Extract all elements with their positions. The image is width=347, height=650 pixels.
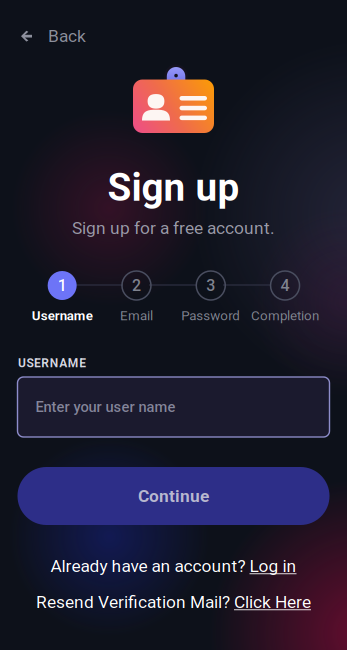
staticText: Resend Verification Mail? Click Here [36,592,311,612]
staticText: 4 [280,276,289,295]
staticText: 2 [132,276,141,295]
staticText: Enter your user name [35,398,175,416]
staticText: Sign up for a free account. [72,218,275,238]
staticText: USERNAME [18,356,86,370]
button[interactable]: Resend Verification Mail? Click Here [0,592,347,612]
button[interactable]: Back [7,16,100,56]
staticText: 1 [58,276,67,295]
staticText: Completion [251,308,319,324]
staticText: Back [48,26,86,46]
staticText: Continue [138,486,209,506]
staticText: Password [181,308,240,324]
staticText: Already have an account? Log in [50,556,296,576]
button[interactable]: Already have an account? Log in [0,556,347,576]
staticText: Sign up [107,165,239,210]
staticText: Username [32,308,93,324]
staticText: 3 [206,276,215,295]
button[interactable]: Continue [17,467,329,525]
staticText: Email [120,308,153,324]
